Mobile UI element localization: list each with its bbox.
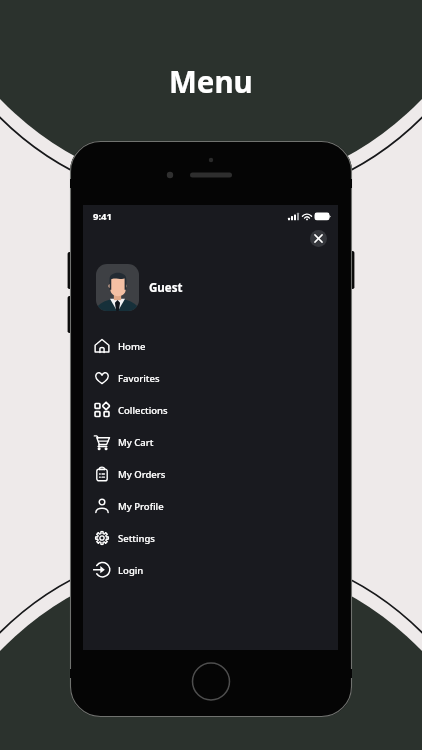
button[interactable]: My Profile: [83, 490, 338, 522]
button[interactable]: Favorites: [83, 362, 338, 394]
staticText: My Cart: [118, 436, 154, 449]
button[interactable]: Collections: [83, 394, 338, 426]
button[interactable]: Settings: [83, 522, 338, 554]
staticText: 9:41: [93, 210, 112, 223]
staticText: Settings: [118, 532, 155, 545]
button[interactable]: Guest: [96, 264, 183, 311]
staticText: Login: [118, 564, 144, 577]
button[interactable]: Home: [83, 330, 338, 362]
staticText: Home: [118, 340, 146, 353]
staticText: Collections: [118, 404, 168, 417]
button[interactable]: My Cart: [83, 426, 338, 458]
staticText: My Profile: [118, 500, 164, 513]
button[interactable]: My Orders: [83, 458, 338, 490]
staticText: Menu: [169, 61, 253, 101]
button[interactable]: Close: [310, 230, 327, 247]
staticText: My Orders: [118, 468, 166, 481]
button[interactable]: Login: [83, 554, 338, 586]
staticText: Guest: [149, 280, 183, 296]
staticText: Favorites: [118, 372, 160, 385]
